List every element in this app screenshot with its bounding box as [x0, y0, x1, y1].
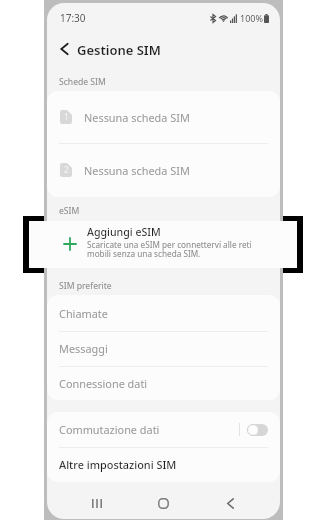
- staticText: SIM preferite: [59, 280, 112, 292]
- staticText: Gestione SIM: [77, 41, 161, 59]
- staticText: Nessuna scheda SIM: [84, 110, 190, 125]
- staticText: 100%: [240, 12, 263, 24]
- staticText: Scaricate una eSIM per connettervi alle …: [87, 239, 252, 259]
- button[interactable]: Recent apps: [79, 486, 115, 519]
- button[interactable]: Home: [145, 486, 181, 519]
- button[interactable]: Back: [47, 34, 77, 66]
- button[interactable]: Messaggi: [47, 331, 280, 366]
- button[interactable]: Aggiungi eSIM: [29, 221, 297, 268]
- button[interactable]: Altre impostazioni SIM: [47, 447, 280, 482]
- staticText: 2: [64, 164, 69, 176]
- button[interactable]: Commutazione dati: [47, 412, 280, 447]
- staticText: 1: [64, 111, 69, 123]
- staticText: Aggiungi eSIM: [87, 225, 161, 239]
- staticText: Commutazione dati: [59, 422, 160, 437]
- staticText: Nessuna scheda SIM: [84, 163, 190, 178]
- button[interactable]: 2: [47, 143, 280, 197]
- button[interactable]: Back: [212, 486, 248, 519]
- staticText: Chiamate: [59, 306, 108, 321]
- staticText: Connessione dati: [59, 376, 148, 391]
- staticText: 17:30: [60, 11, 86, 25]
- staticText: Altre impostazioni SIM: [59, 457, 177, 472]
- button[interactable]: Chiamate: [47, 295, 280, 331]
- staticText: eSIM: [59, 205, 80, 217]
- button[interactable]: 1: [47, 91, 280, 143]
- staticText: Messaggi: [59, 341, 108, 356]
- staticText: Schede SIM: [59, 76, 106, 88]
- button[interactable]: Connessione dati: [47, 366, 280, 400]
